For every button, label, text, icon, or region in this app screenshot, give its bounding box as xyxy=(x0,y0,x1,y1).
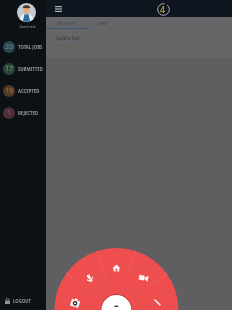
staticText: Περιγραφή xyxy=(56,43,75,48)
staticText: 19 xyxy=(5,86,14,96)
staticText: SYNC xyxy=(98,21,108,26)
staticText: INCIDENTS xyxy=(58,21,78,26)
button[interactable]: Open navigation drawer xyxy=(50,1,66,17)
staticText: ACCEPTED xyxy=(18,88,40,94)
staticText: TOTAL JOBS xyxy=(18,44,43,50)
staticText: 1 xyxy=(7,108,12,118)
staticText: Ομάδα Test xyxy=(56,35,80,41)
staticText: 4 xyxy=(160,3,166,15)
button[interactable]: Notifications xyxy=(155,1,171,17)
staticText: REJECTED xyxy=(18,110,39,116)
button[interactable]: 1 xyxy=(0,102,46,124)
staticText: 17 xyxy=(5,64,14,74)
button[interactable]: SYNC xyxy=(89,17,116,29)
button[interactable]: Ομάδα Test xyxy=(0,29,232,58)
button[interactable]: INCIDENTS xyxy=(46,17,89,29)
staticText: 20 xyxy=(5,42,14,52)
button[interactable]: LOGOUT xyxy=(0,292,46,310)
staticText: LOGOUT xyxy=(13,298,31,304)
staticText: Guest test xyxy=(8,24,47,29)
button[interactable]: 17 xyxy=(0,58,46,80)
button[interactable]: 19 xyxy=(0,80,46,102)
button[interactable]: Close menu xyxy=(101,294,131,310)
staticText: SUBMITTED xyxy=(18,66,43,72)
button[interactable]: 20 xyxy=(0,36,46,58)
